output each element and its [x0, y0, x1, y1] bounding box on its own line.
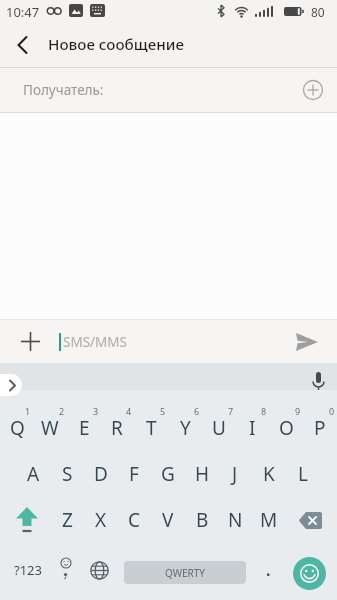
button[interactable]: A: [16, 452, 50, 496]
staticText: QWERTY: [165, 566, 206, 580]
staticText: T: [146, 415, 157, 441]
staticText: J: [232, 461, 238, 487]
button[interactable]: E: [67, 406, 101, 450]
staticText: 80: [311, 4, 325, 20]
button[interactable]: K: [252, 452, 286, 496]
button[interactable]: L: [286, 452, 320, 496]
button[interactable]: [294, 330, 320, 354]
button[interactable]: V: [151, 498, 185, 542]
staticText: E: [79, 415, 90, 441]
staticText: 4: [126, 405, 132, 417]
staticText: Z: [62, 507, 73, 533]
button[interactable]: [0, 374, 22, 396]
button[interactable]: [291, 498, 329, 542]
staticText: 8: [261, 405, 267, 417]
button[interactable]: Q: [0, 406, 34, 450]
staticText: U: [212, 415, 226, 441]
button[interactable]: D: [84, 452, 118, 496]
staticText: .: [266, 559, 271, 581]
button[interactable]: P: [303, 406, 337, 450]
button[interactable]: [10, 33, 34, 57]
button[interactable]: [52, 548, 80, 592]
button[interactable]: W: [33, 406, 67, 450]
staticText: 6: [194, 405, 200, 417]
button[interactable]: J: [218, 452, 252, 496]
staticText: S: [62, 461, 73, 487]
staticText: N: [228, 507, 243, 533]
button[interactable]: R: [100, 406, 134, 450]
button[interactable]: .: [255, 548, 281, 592]
staticText: 3: [93, 405, 99, 417]
staticText: 1: [25, 405, 31, 417]
staticText: A: [27, 461, 40, 487]
staticText: 7: [228, 405, 234, 417]
button[interactable]: B: [185, 498, 219, 542]
button[interactable]: X: [84, 498, 118, 542]
staticText: L: [298, 461, 308, 487]
button[interactable]: [293, 557, 326, 590]
staticText: I: [249, 415, 256, 441]
staticText: W: [41, 415, 59, 441]
button[interactable]: SMS/MMS: [63, 320, 127, 363]
staticText: Получатель:: [23, 81, 104, 99]
button[interactable]: [18, 329, 42, 353]
button[interactable]: M: [252, 498, 286, 542]
button[interactable]: [8, 498, 46, 542]
button[interactable]: QWERTY: [124, 561, 246, 584]
button[interactable]: S: [50, 452, 84, 496]
button[interactable]: H: [185, 452, 219, 496]
button[interactable]: O: [269, 406, 303, 450]
staticText: Y: [180, 415, 191, 441]
button[interactable]: [300, 77, 325, 102]
staticText: C: [128, 507, 141, 533]
button[interactable]: T: [134, 406, 168, 450]
button[interactable]: G: [151, 452, 185, 496]
button[interactable]: C: [117, 498, 151, 542]
staticText: Новое сообщение: [48, 34, 184, 55]
button[interactable]: N: [218, 498, 252, 542]
staticText: M: [260, 507, 278, 533]
staticText: P: [314, 415, 326, 441]
staticText: Q: [10, 415, 25, 441]
button[interactable]: Z: [50, 498, 84, 542]
button[interactable]: Получатель:: [0, 68, 337, 113]
button[interactable]: F: [117, 452, 151, 496]
button[interactable]: [306, 370, 330, 394]
staticText: ?123: [14, 561, 42, 579]
staticText: B: [196, 507, 209, 533]
staticText: D: [94, 461, 108, 487]
staticText: 9: [295, 405, 301, 417]
staticText: G: [161, 461, 175, 487]
staticText: K: [263, 461, 275, 487]
staticText: 5: [160, 405, 166, 417]
staticText: V: [162, 507, 174, 533]
staticText: SMS/MMS: [63, 333, 127, 351]
staticText: H: [195, 461, 210, 487]
staticText: 0: [329, 405, 335, 417]
staticText: O: [279, 415, 294, 441]
staticText: R: [111, 415, 123, 441]
staticText: 2: [59, 405, 65, 417]
button[interactable]: U: [202, 406, 236, 450]
staticText: 10:47: [6, 3, 40, 21]
staticText: F: [129, 461, 139, 487]
button[interactable]: ?123: [8, 548, 48, 592]
button[interactable]: [84, 548, 114, 592]
button[interactable]: Y: [168, 406, 202, 450]
button[interactable]: I: [235, 406, 269, 450]
staticText: X: [95, 507, 107, 533]
